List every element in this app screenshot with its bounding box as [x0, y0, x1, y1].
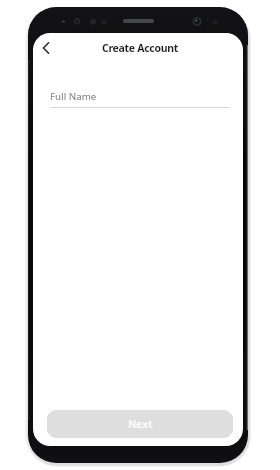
button[interactable]: [36, 38, 56, 58]
button[interactable]: Next: [47, 410, 233, 438]
staticText: Create Account: [102, 41, 179, 55]
staticText: Next: [128, 417, 153, 431]
staticText: Full Name: [50, 90, 97, 103]
button[interactable]: [50, 85, 230, 109]
